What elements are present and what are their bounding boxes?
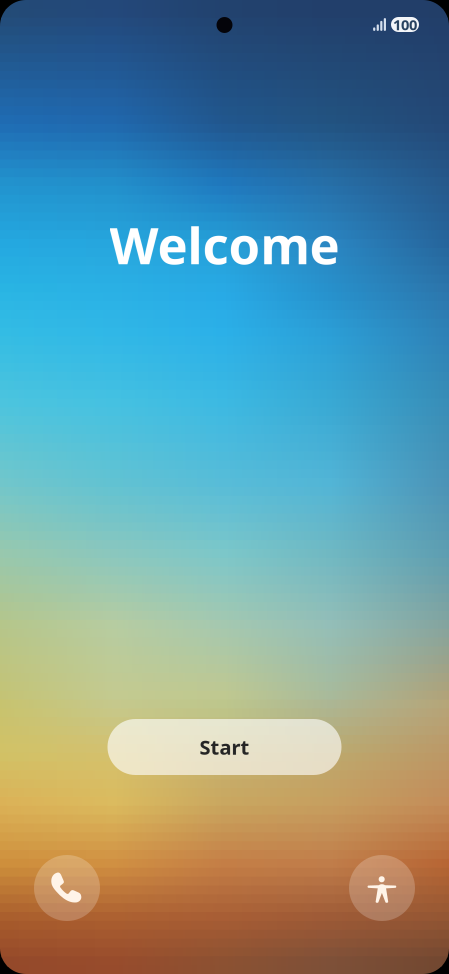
button[interactable]: Accessibility [349,855,415,921]
button[interactable]: Start [107,719,341,775]
staticText: 100 [393,15,417,34]
staticText: Start [199,734,249,760]
staticText: Welcome [109,211,339,278]
button[interactable]: Call [34,855,100,921]
